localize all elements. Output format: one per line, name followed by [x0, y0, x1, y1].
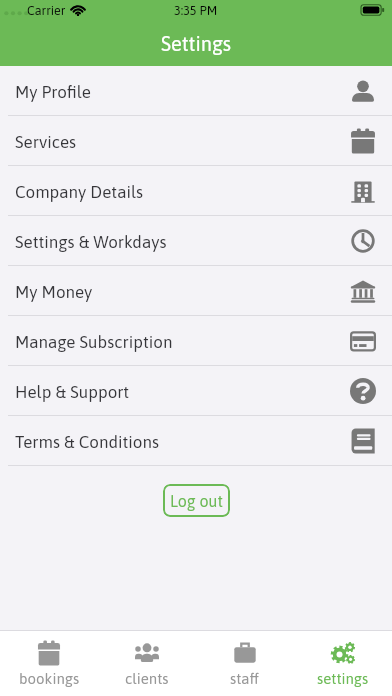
- staticText: settings: [317, 670, 369, 687]
- staticText: Settings & Workdays: [15, 232, 167, 251]
- staticText: My Profile: [15, 82, 91, 101]
- staticText: Services: [15, 132, 77, 151]
- button[interactable]: Help & Support: [0, 366, 392, 416]
- button[interactable]: Services: [0, 116, 392, 166]
- staticText: bookings: [19, 670, 80, 687]
- button[interactable]: Company Details: [0, 166, 392, 216]
- button[interactable]: Terms & Conditions: [0, 416, 392, 466]
- other: Signal: [4, 4, 27, 18]
- staticText: clients: [125, 670, 169, 687]
- button[interactable]: bookings: [0, 631, 98, 696]
- staticText: Log out: [170, 492, 223, 510]
- button[interactable]: Settings & Workdays: [0, 216, 392, 266]
- staticText: My Money: [15, 282, 93, 301]
- staticText: Terms & Conditions: [15, 432, 159, 451]
- staticText: Carrier: [27, 3, 66, 17]
- staticText: Help & Support: [15, 382, 130, 401]
- other: Wi-Fi: [71, 4, 85, 18]
- button[interactable]: clients: [98, 631, 196, 696]
- staticText: staff: [230, 670, 260, 687]
- staticText: Settings: [161, 32, 232, 55]
- button[interactable]: My Money: [0, 266, 392, 316]
- button[interactable]: Log out: [163, 484, 230, 517]
- button[interactable]: My Profile: [0, 66, 392, 116]
- staticText: Manage Subscription: [15, 332, 173, 351]
- button[interactable]: Manage Subscription: [0, 316, 392, 366]
- other: Battery: [361, 3, 385, 17]
- staticText: Company Details: [15, 182, 143, 201]
- button[interactable]: staff: [196, 631, 294, 696]
- button[interactable]: settings: [294, 631, 392, 696]
- staticText: 3:35 PM: [174, 3, 218, 17]
